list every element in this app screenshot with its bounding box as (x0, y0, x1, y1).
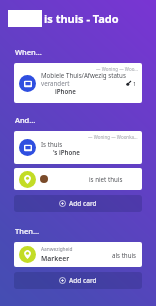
staticText: 1 (133, 80, 137, 87)
button[interactable]: — Woning — Woo… (14, 63, 142, 103)
staticText: Mobiele Thuis/Afwezig status (41, 71, 126, 79)
staticText: is thuis - Tado (44, 11, 119, 26)
staticText: als thuis (112, 251, 137, 259)
staticText: — Woning — Woonka… (88, 134, 138, 140)
staticText: And… (15, 115, 36, 125)
staticText: Aanwezigheid (41, 246, 73, 253)
staticText: Add card (69, 199, 97, 208)
staticText: — Woning — Woo… (96, 66, 138, 72)
staticText: Add card (69, 276, 97, 285)
button[interactable]: is niet thuis (14, 168, 142, 190)
staticText: 's iPhone (53, 148, 80, 156)
button[interactable]: — Woning — Woonka… (14, 131, 142, 164)
button[interactable]: Add card (14, 195, 142, 212)
staticText: Is thuis (41, 140, 63, 148)
staticText: is niet thuis (89, 175, 123, 183)
staticText: Then… (15, 226, 39, 236)
staticText: verandert (41, 79, 70, 87)
staticText: Markeer (41, 254, 70, 263)
button[interactable]: Add card (14, 272, 142, 289)
staticText: When… (15, 47, 42, 57)
button[interactable]: Aanwezigheid (14, 242, 142, 267)
staticText: iPhone (55, 87, 76, 95)
